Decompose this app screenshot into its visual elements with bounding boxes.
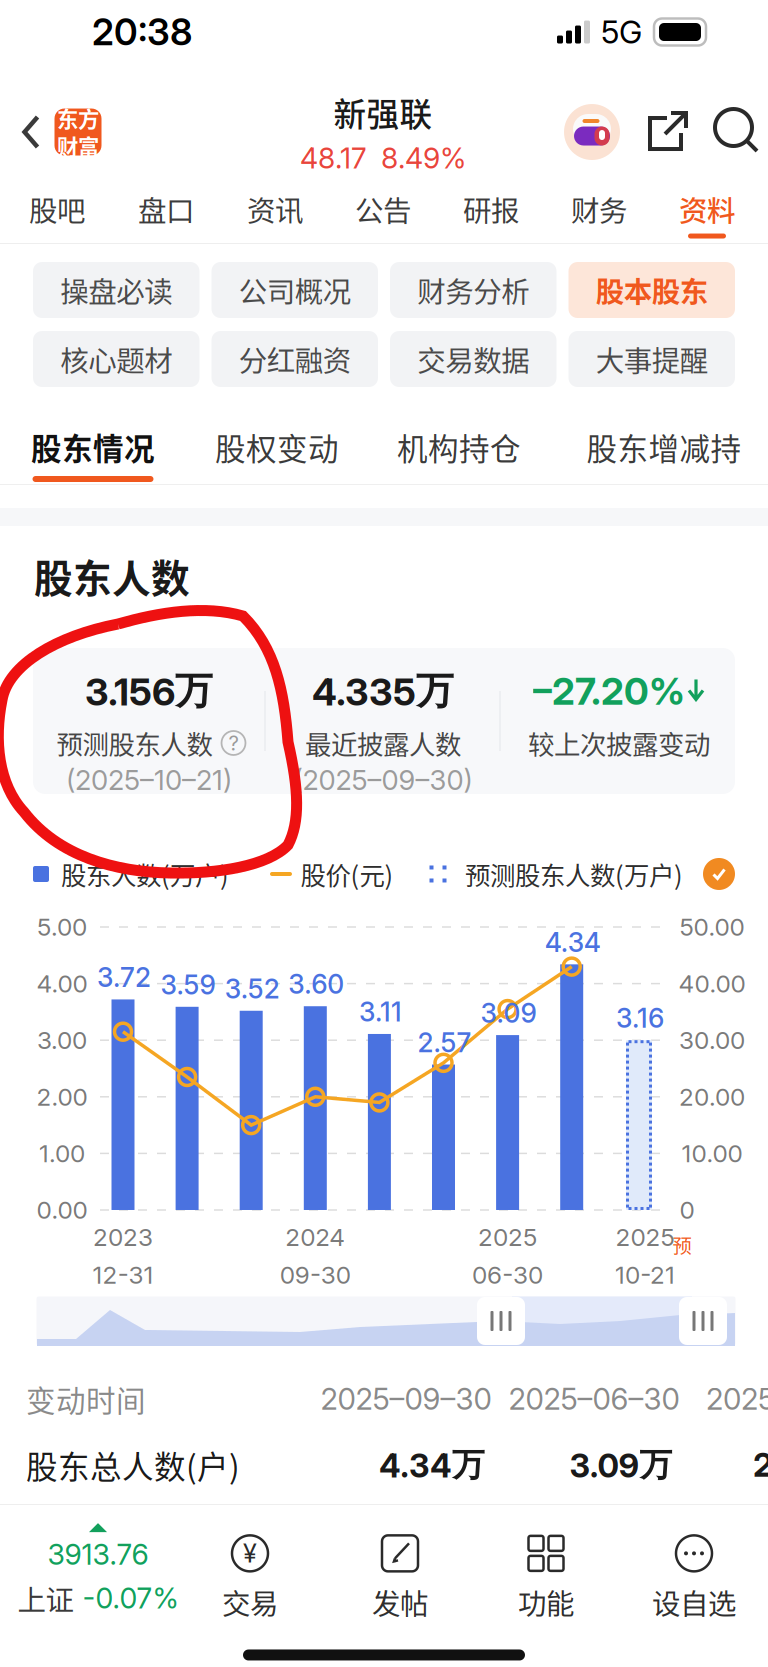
staticText: (2025–09–30) [293, 763, 472, 797]
staticText: 财务 [571, 188, 627, 230]
button[interactable]: 研报 [445, 178, 537, 240]
staticText: 0.00 [36, 1195, 87, 1225]
button[interactable]: 3913.76 [9, 1515, 186, 1627]
staticText: 研报 [463, 188, 519, 230]
staticText: 2025 [615, 1222, 674, 1252]
staticText: 较上次披露变动 [528, 724, 710, 762]
button[interactable]: 发帖 [366, 1525, 434, 1629]
button[interactable]: 公司概况 [211, 262, 378, 318]
staticText: 2023 [93, 1222, 153, 1252]
staticText: 3.60 [288, 968, 344, 1000]
button[interactable]: 股权变动 [201, 413, 353, 481]
staticText: 20.00 [679, 1082, 745, 1111]
staticText: 股东情况 [31, 425, 155, 469]
staticText: 预 [672, 1231, 691, 1259]
staticText: 财富 [57, 130, 99, 161]
staticText: 10.00 [681, 1139, 742, 1168]
staticText: 预测股东人数 [56, 724, 212, 762]
staticText: 2 [753, 1445, 768, 1485]
staticText: 分红融资 [239, 338, 351, 380]
button[interactable]: 股吧 [11, 178, 103, 240]
button[interactable]: 机构持仓 [383, 413, 535, 481]
staticText: 核心题材 [60, 338, 172, 380]
staticText: 交易数据 [417, 338, 529, 380]
staticText: 3.156万 [85, 667, 213, 715]
button[interactable]: 设自选 [646, 1525, 742, 1629]
button[interactable]: 股东情况 [17, 413, 169, 481]
staticText: 30.00 [679, 1025, 745, 1055]
staticText: 设自选 [652, 1581, 736, 1623]
button[interactable]: ¥ [216, 1525, 284, 1629]
staticText: (2025–10–21) [66, 763, 232, 797]
button[interactable]: 资料 [661, 178, 753, 240]
button[interactable]: 操盘必读 [33, 262, 199, 318]
staticText: 4.34 [545, 926, 601, 958]
staticText: 20:38 [92, 10, 192, 54]
button[interactable]: Search [713, 108, 759, 154]
staticText: 3.16 [616, 1002, 664, 1034]
button[interactable]: 分红融资 [211, 331, 378, 387]
staticText: 股东总人数(户) [26, 1442, 240, 1488]
staticText: 2025 [478, 1222, 537, 1252]
staticText: 1.00 [39, 1139, 85, 1168]
staticText: 5G [601, 13, 642, 51]
button[interactable]: 核心题材 [33, 331, 199, 387]
staticText: 东方 [57, 103, 99, 133]
staticText: 资料 [679, 188, 735, 230]
staticText: 公告 [355, 188, 411, 230]
staticText: 机构持仓 [397, 425, 521, 469]
staticText: 2025– [706, 1381, 768, 1417]
staticText: 股吧 [29, 188, 85, 230]
button[interactable]: 财务分析 [390, 262, 556, 318]
button[interactable]: 股东增减持 [572, 413, 755, 481]
button[interactable]: 公告 [337, 178, 429, 240]
staticText: 股价(元) [300, 856, 393, 892]
staticText: 10-21 [615, 1260, 675, 1289]
button[interactable]: 功能 [512, 1525, 580, 1629]
staticText: 大事提醒 [596, 338, 708, 380]
button[interactable]: Back [9, 104, 52, 160]
staticText: 3.09万 [569, 1444, 672, 1485]
staticText: 3.11 [359, 996, 402, 1028]
staticText: ? [228, 731, 238, 755]
staticText: 4.34万 [379, 1444, 485, 1485]
button[interactable]: AI assistant [563, 103, 621, 161]
staticText: -0.07% [82, 1581, 178, 1615]
staticText: 0 [679, 1195, 694, 1225]
button[interactable]: East Money home [54, 108, 101, 155]
staticText: 发帖 [372, 1581, 428, 1623]
staticText: 48.17 [300, 141, 367, 175]
staticText: –27.20% [533, 668, 685, 714]
staticText: 股东人数(万户) [61, 856, 229, 892]
staticText: 上证 [17, 1578, 73, 1619]
staticText: 8.49% [381, 141, 466, 175]
staticText: 3.00 [37, 1025, 87, 1055]
staticText: 股东增减持 [586, 425, 741, 469]
staticText: 3913.76 [47, 1537, 148, 1572]
staticText: 12-31 [92, 1260, 153, 1289]
button[interactable]: 资讯 [229, 178, 321, 240]
staticText: 3.52 [225, 973, 280, 1005]
staticText: 06-30 [472, 1260, 543, 1289]
staticText: 新强联 [333, 89, 432, 136]
staticText: 2025–09–30 [320, 1381, 491, 1417]
staticText: 5.00 [37, 912, 87, 942]
staticText: 3.72 [97, 961, 151, 993]
button[interactable]: 财务 [553, 178, 645, 240]
staticText: 2.57 [417, 1026, 471, 1058]
staticText: 变动时间 [26, 1378, 146, 1420]
staticText: ¥ [243, 1538, 257, 1569]
staticText: 股本股东 [596, 269, 708, 311]
staticText: 交易 [222, 1581, 278, 1623]
button[interactable]: 交易数据 [390, 331, 556, 387]
button[interactable]: 大事提醒 [568, 331, 735, 387]
button[interactable]: 股本股东 [568, 262, 735, 318]
button[interactable]: Share [645, 108, 691, 154]
staticText: 3.59 [161, 969, 216, 1001]
button[interactable]: 盘口 [120, 178, 212, 240]
staticText: 2025–06–30 [508, 1381, 679, 1417]
staticText: 股东人数 [34, 548, 190, 604]
staticText: 40.00 [678, 969, 745, 998]
staticText: 09-30 [280, 1260, 351, 1289]
staticText: 最近披露人数 [305, 724, 461, 762]
